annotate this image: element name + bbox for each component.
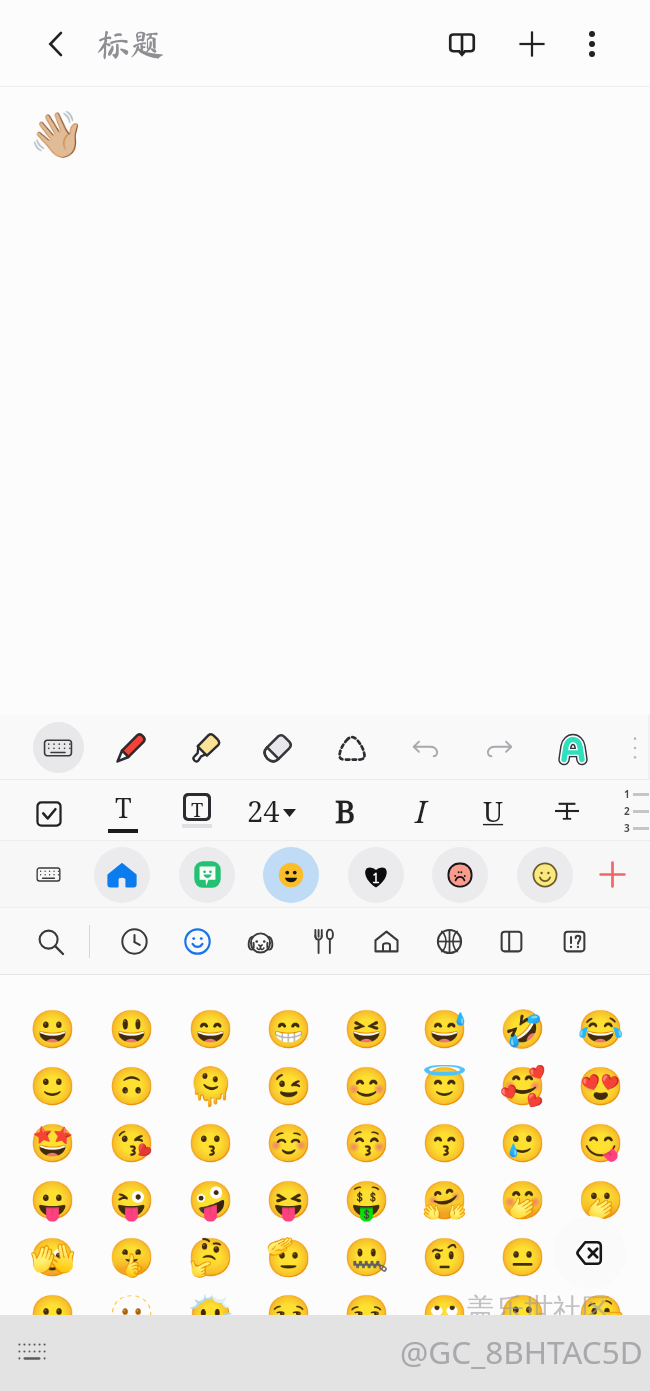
- button[interactable]: 😐: [483, 1229, 561, 1286]
- button[interactable]: Eraser: [246, 715, 310, 780]
- button[interactable]: Emoji: [261, 841, 321, 908]
- button[interactable]: 🤪: [171, 1172, 249, 1229]
- button[interactable]: 🤨: [405, 1229, 483, 1286]
- button[interactable]: 🤗: [405, 1172, 483, 1229]
- button[interactable]: Animals and nature: [232, 908, 288, 975]
- button[interactable]: Lasso select: [320, 715, 384, 780]
- button[interactable]: Recent: [106, 908, 162, 975]
- button[interactable]: Home stickers: [92, 841, 152, 908]
- staticText: 1: [624, 787, 630, 801]
- button[interactable]: 标题: [90, 0, 240, 87]
- button[interactable]: Reading view: [434, 0, 490, 87]
- button[interactable]: Pink face sticker: [430, 841, 490, 908]
- button[interactable]: Italic: [387, 780, 451, 841]
- button[interactable]: 😉: [249, 1058, 327, 1115]
- staticText: B: [335, 790, 356, 832]
- button[interactable]: Objects: [483, 908, 539, 975]
- button[interactable]: Search: [23, 908, 79, 975]
- button[interactable]: 🤭: [483, 1172, 561, 1229]
- button[interactable]: 😇: [405, 1058, 483, 1115]
- staticText: 😜: [108, 1179, 155, 1222]
- button[interactable]: 🫠: [171, 1058, 249, 1115]
- button[interactable]: 😅: [405, 1001, 483, 1058]
- button[interactable]: Strikethrough: [535, 780, 599, 841]
- staticText: 😗: [187, 1122, 234, 1165]
- button[interactable]: Text recognition: [541, 715, 605, 780]
- button[interactable]: More tools: [627, 715, 643, 780]
- staticText: 🙄: [421, 1293, 468, 1336]
- button[interactable]: 😁: [249, 1001, 327, 1058]
- button[interactable]: Numbered list: [624, 780, 650, 841]
- button[interactable]: 😀: [13, 1001, 92, 1058]
- button[interactable]: ☺️: [249, 1115, 327, 1172]
- button[interactable]: Paragraph style: [91, 780, 155, 841]
- button[interactable]: 🤑: [327, 1172, 405, 1229]
- button[interactable]: 🥰: [483, 1058, 561, 1115]
- button[interactable]: 😶‍🌫️: [171, 1286, 249, 1343]
- button[interactable]: 🙃: [92, 1058, 171, 1115]
- button[interactable]: Underline: [461, 780, 525, 841]
- button[interactable]: Add: [504, 0, 560, 87]
- button[interactable]: 😜: [92, 1172, 171, 1229]
- button[interactable]: 😘: [92, 1115, 171, 1172]
- button[interactable]: 🫥: [92, 1286, 171, 1343]
- button[interactable]: 😒: [327, 1286, 405, 1343]
- button[interactable]: 🤩: [13, 1115, 92, 1172]
- button[interactable]: 😶: [13, 1286, 92, 1343]
- button[interactable]: 😃: [92, 1001, 171, 1058]
- button[interactable]: Font size 24: [239, 780, 303, 841]
- button[interactable]: 😝: [249, 1172, 327, 1229]
- button[interactable]: 😑: [561, 1229, 639, 1286]
- button[interactable]: 😛: [13, 1172, 92, 1229]
- button[interactable]: 😍: [561, 1058, 639, 1115]
- button[interactable]: 😚: [327, 1115, 405, 1172]
- button[interactable]: 🫡: [249, 1229, 327, 1286]
- button[interactable]: Travel and places: [358, 908, 414, 975]
- button[interactable]: 😙: [405, 1115, 483, 1172]
- button[interactable]: Yellow face sticker: [515, 841, 575, 908]
- button[interactable]: More options: [566, 0, 618, 87]
- button[interactable]: Show keyboard: [8, 1329, 56, 1377]
- staticText: 😶‍🌫️: [187, 1293, 234, 1336]
- button[interactable]: 🙄: [405, 1286, 483, 1343]
- button[interactable]: 😏: [249, 1286, 327, 1343]
- button[interactable]: Keyboard: [20, 841, 76, 908]
- button[interactable]: Pen: [99, 715, 163, 780]
- button[interactable]: Symbols: [546, 908, 602, 975]
- staticText: 🥲: [499, 1122, 546, 1165]
- button[interactable]: 😬: [483, 1286, 561, 1343]
- button[interactable]: Back: [28, 0, 82, 87]
- button[interactable]: Bold: [313, 780, 377, 841]
- button[interactable]: 😄: [171, 1001, 249, 1058]
- staticText: T: [115, 789, 132, 826]
- button[interactable]: 😋: [561, 1115, 639, 1172]
- button[interactable]: 😗: [171, 1115, 249, 1172]
- button[interactable]: 🤣: [483, 1001, 561, 1058]
- button[interactable]: 😆: [327, 1001, 405, 1058]
- button[interactable]: Text highlight: [165, 780, 229, 841]
- button[interactable]: Keyboard: [26, 715, 90, 780]
- button[interactable]: 🥲: [483, 1115, 561, 1172]
- staticText: 😑: [577, 1236, 624, 1279]
- button[interactable]: 🤫: [92, 1229, 171, 1286]
- button[interactable]: 😊: [327, 1058, 405, 1115]
- button[interactable]: Sticker pack: [177, 841, 237, 908]
- button[interactable]: 🤥: [561, 1286, 639, 1343]
- button[interactable]: Undo: [394, 715, 458, 780]
- button[interactable]: Heart sticker: [346, 841, 406, 908]
- button[interactable]: 🙂: [13, 1058, 92, 1115]
- button[interactable]: Add stickers: [586, 841, 638, 908]
- staticText: 🤨: [421, 1236, 468, 1279]
- button[interactable]: 🤔: [171, 1229, 249, 1286]
- button[interactable]: Backspace: [553, 1216, 626, 1289]
- button[interactable]: Food and drink: [295, 908, 351, 975]
- button[interactable]: Highlighter: [173, 715, 237, 780]
- button[interactable]: Redo: [467, 715, 531, 780]
- button[interactable]: Checklist: [17, 780, 81, 841]
- button[interactable]: 😂: [561, 1001, 639, 1058]
- button[interactable]: Activities: [421, 908, 477, 975]
- button[interactable]: Smileys and people: [169, 908, 225, 975]
- button[interactable]: 🫢: [561, 1172, 639, 1229]
- button[interactable]: 🫣: [13, 1229, 92, 1286]
- button[interactable]: 🤐: [327, 1229, 405, 1286]
